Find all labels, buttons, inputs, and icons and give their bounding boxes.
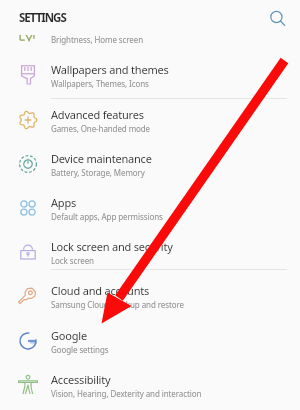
staticText: SETTINGS: [19, 10, 66, 26]
staticText: Wallpapers and themes: [51, 62, 169, 77]
staticText: Lock screen: [51, 255, 94, 266]
staticText: Device maintenance: [51, 151, 152, 166]
staticText: Google settings: [51, 344, 109, 355]
staticText: Default apps, App permissions: [51, 211, 163, 222]
staticText: Advanced features: [51, 107, 144, 122]
button[interactable]: Google: [0, 319, 300, 363]
staticText: Samsung Cloud, Backup and restore: [51, 299, 184, 310]
button[interactable]: Lock screen and security: [0, 230, 300, 274]
button[interactable]: Device maintenance: [0, 142, 300, 186]
button[interactable]: Cloud and accounts: [0, 274, 300, 318]
staticText: Cloud and accounts: [51, 283, 150, 298]
staticText: Display: [51, 18, 88, 33]
staticText: Accessibility: [51, 372, 111, 387]
button[interactable]: Accessibility: [0, 363, 300, 407]
button[interactable]: Apps: [0, 186, 300, 230]
staticText: Games, One-handed mode: [51, 123, 150, 134]
button[interactable]: Advanced features: [0, 98, 300, 142]
button[interactable]: Wallpapers and themes: [0, 53, 300, 97]
staticText: Google: [51, 328, 87, 343]
staticText: Apps: [51, 195, 77, 210]
button[interactable]: Display: [0, 9, 300, 53]
staticText: Lock screen and security: [51, 239, 173, 254]
staticText: Vision, Hearing, Dexterity and interacti…: [51, 388, 202, 399]
staticText: Brightness, Home screen: [51, 34, 143, 45]
button[interactable]: Search: [267, 8, 289, 30]
staticText: Battery, Storage, Memory: [51, 167, 145, 178]
staticText: Wallpapers, Themes, Icons: [51, 78, 149, 89]
